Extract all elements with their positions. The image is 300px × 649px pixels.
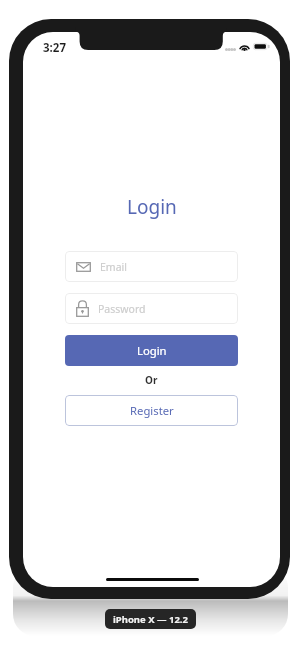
staticText: Or — [145, 373, 158, 387]
button[interactable]: Login — [65, 335, 238, 366]
staticText: Password — [98, 302, 146, 316]
staticText: Register — [130, 403, 174, 418]
button[interactable]: Register — [65, 395, 238, 426]
staticText: Login — [127, 194, 177, 220]
button[interactable]: Password — [65, 293, 238, 324]
staticText: Email — [100, 260, 127, 274]
button[interactable]: Email — [65, 251, 238, 282]
staticText: 3:27 — [43, 40, 66, 56]
staticText: iPhone X — 12.2 — [113, 613, 188, 626]
staticText: Login — [137, 343, 167, 358]
